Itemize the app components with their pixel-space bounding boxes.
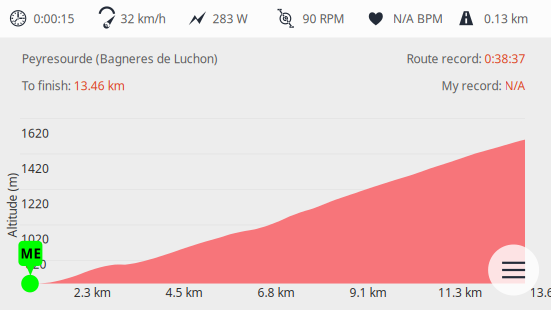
staticText: Route record:	[406, 50, 484, 66]
staticText: 1220	[21, 196, 49, 211]
staticText: 0:38:37	[484, 50, 525, 66]
staticText: 6.8 km	[257, 284, 294, 300]
staticText: N/A BPM	[393, 11, 443, 26]
staticText: To finish:	[22, 77, 74, 93]
staticText: My record:	[441, 77, 504, 93]
staticText: 32 km/h	[120, 11, 165, 26]
staticText: 9.1 km	[349, 284, 386, 300]
staticText: 283 W	[213, 11, 248, 26]
staticText: 13.6 km	[530, 284, 551, 300]
staticText: 1020	[21, 231, 49, 247]
staticText: 820	[25, 256, 46, 272]
staticText: ME	[20, 244, 40, 262]
staticText: 13.46 km	[74, 77, 125, 93]
staticText: 4.5 km	[166, 284, 203, 300]
staticText: 0:00:15	[33, 11, 74, 26]
staticText: Peyresourde (Bagneres de Luchon)	[22, 50, 218, 66]
staticText: N/A	[504, 77, 525, 93]
button[interactable]: Menu	[488, 244, 539, 295]
staticText: 1420	[21, 160, 49, 176]
staticText: 2.3 km	[74, 284, 111, 300]
staticText: 1620	[21, 125, 49, 141]
staticText: 0.13 km	[484, 11, 528, 26]
staticText: Altitude (m)	[0, 197, 44, 213]
staticText: 11.3 km	[438, 284, 482, 300]
staticText: 90 RPM	[303, 11, 345, 26]
